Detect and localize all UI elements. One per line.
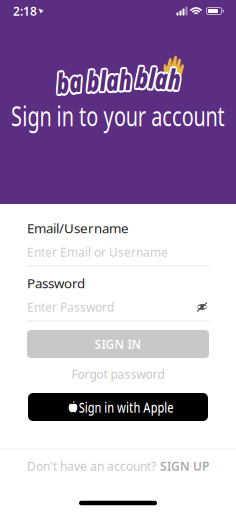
staticText: blah — [81, 62, 141, 100]
staticText: blah — [129, 58, 189, 95]
button[interactable]: Show password — [195, 301, 208, 312]
staticText: 2:18 — [13, 3, 37, 19]
staticText: blah — [79, 59, 139, 97]
staticText: ba — [50, 63, 84, 101]
staticText: SIGN UP — [160, 458, 209, 474]
staticText: ba — [51, 65, 85, 102]
staticText: blah — [77, 60, 137, 97]
staticText: blah — [80, 60, 140, 97]
staticText: blah — [128, 61, 188, 99]
button[interactable]: SIGN IN — [27, 330, 209, 358]
staticText: ba — [54, 64, 88, 102]
button[interactable]: Forgot password — [63, 363, 172, 385]
staticText: Don't have an account? — [27, 458, 156, 474]
staticText: Sign in to your account — [0, 98, 236, 134]
staticText: blah — [81, 61, 141, 99]
staticText: Enter Password — [27, 299, 114, 315]
staticText: ba — [52, 65, 86, 103]
staticText: ba — [52, 63, 86, 101]
staticText: Password — [27, 274, 85, 292]
staticText: ba — [50, 62, 84, 100]
staticText: blah — [80, 63, 140, 100]
staticText: blah — [130, 60, 190, 98]
staticText: Email/Username — [27, 219, 129, 237]
staticText: blah — [128, 59, 188, 97]
staticText: blah — [78, 63, 138, 100]
staticText: blah — [127, 61, 187, 98]
staticText: blah — [126, 58, 186, 96]
staticText: blah — [128, 57, 188, 95]
staticText: blah — [79, 63, 139, 101]
staticText: blah — [129, 61, 189, 98]
staticText: ba — [53, 65, 87, 102]
staticText: Forgot password — [71, 366, 164, 382]
staticText: SIGN IN — [94, 336, 141, 352]
staticText: ba — [53, 65, 87, 102]
staticText: Sign in with Apple — [63, 397, 189, 417]
staticText: ba — [53, 62, 87, 99]
staticText: ba — [52, 61, 86, 99]
staticText: blah — [79, 61, 139, 99]
staticText: ba — [50, 65, 84, 102]
staticText: ba — [54, 63, 88, 101]
staticText: blah — [77, 60, 137, 98]
staticText: blah — [129, 61, 189, 98]
staticText: Enter Email or Username — [27, 244, 168, 260]
staticText: blah — [77, 61, 137, 99]
staticText: blah — [126, 61, 186, 98]
staticText: blah — [126, 58, 186, 95]
staticText: blah — [126, 59, 186, 97]
staticText: blah — [77, 63, 137, 100]
button[interactable]: Sign in with Apple — [28, 393, 208, 421]
staticText: ba — [50, 62, 84, 99]
staticText: blah — [130, 59, 190, 97]
staticText: blah — [80, 63, 140, 100]
button[interactable]: Don't have an account? — [27, 454, 209, 478]
